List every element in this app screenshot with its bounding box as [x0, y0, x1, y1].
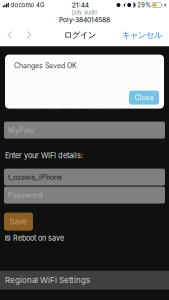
- staticText: 29%: [137, 1, 151, 9]
- button[interactable]: Save: [0, 213, 33, 231]
- staticText: t_ozawa_iPhone: [8, 173, 62, 181]
- staticText: poly.audio: [72, 9, 97, 16]
- button[interactable]: Back: [0, 25, 20, 45]
- button[interactable]: キャンセル: [122, 25, 169, 45]
- staticText: Changes Saved OK: [14, 62, 77, 70]
- staticText: 21:44: [72, 1, 89, 9]
- staticText: Save: [9, 217, 27, 226]
- staticText: Close: [134, 93, 153, 102]
- staticText: キャンセル: [122, 30, 162, 40]
- staticText: docomo: [10, 1, 34, 9]
- button[interactable]: Close: [129, 91, 159, 105]
- staticText: Password: [8, 191, 42, 199]
- staticText: Poly-384014588: [59, 16, 110, 24]
- staticText: ログイン: [64, 30, 96, 40]
- staticText: 4G: [36, 1, 44, 9]
- staticText: Regional WiFi Settings: [5, 275, 90, 285]
- staticText: Personalise your Poly's hostname:: [5, 103, 121, 112]
- staticText: Enter your WIFI details:: [5, 151, 83, 160]
- staticText: Reboot on save: [13, 234, 64, 243]
- button[interactable]: Forward: [20, 25, 38, 45]
- staticText: MyPoly: [8, 126, 34, 134]
